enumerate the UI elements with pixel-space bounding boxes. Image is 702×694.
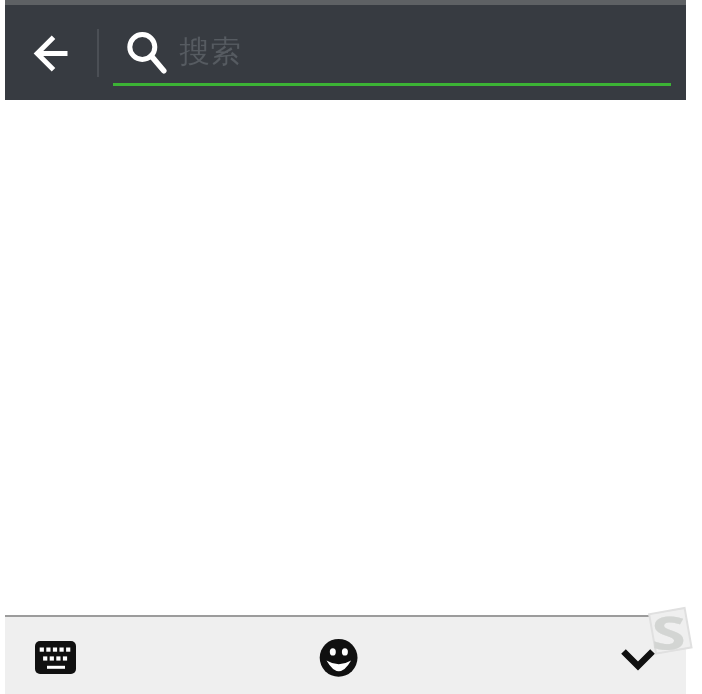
button[interactable] — [610, 635, 666, 683]
button[interactable] — [23, 23, 83, 83]
staticText: 搜索 — [179, 32, 241, 71]
button[interactable] — [311, 630, 367, 686]
staticText: S — [651, 601, 687, 657]
button[interactable]: 搜索 — [105, 15, 671, 87]
button[interactable] — [27, 631, 91, 681]
